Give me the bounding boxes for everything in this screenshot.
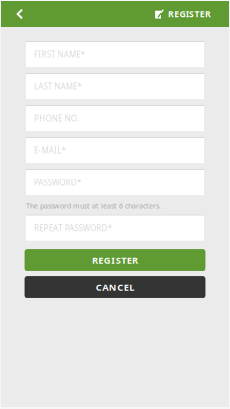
button[interactable]: REGISTER [25,250,205,271]
staticText: CANCEL [96,281,134,293]
staticText: E-MAIL* [34,145,65,156]
staticText: The password must at least 6 characters. [26,201,161,211]
staticText: PHONE NO. [34,113,79,124]
staticText: LAST NAME* [34,81,81,92]
staticText: REGISTER [168,8,211,20]
staticText: REGISTER [92,254,138,266]
button[interactable]: CANCEL [25,277,205,298]
staticText: REPEAT PASSWORD* [34,223,112,233]
staticText: FIRST NAME* [34,49,84,60]
button[interactable]: Back [1,1,33,27]
staticText: PASSWORD* [34,177,81,188]
button[interactable]: REGISTER [155,1,229,27]
